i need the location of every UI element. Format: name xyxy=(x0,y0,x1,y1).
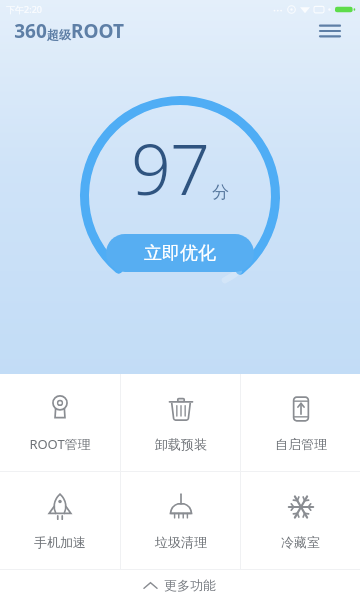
staticText: 手机加速 xyxy=(34,534,86,550)
button[interactable]: ROOT管理 xyxy=(0,374,120,471)
button[interactable]: 自启管理 xyxy=(241,374,360,471)
button[interactable]: 手机加速 xyxy=(0,472,120,569)
staticText: 更多功能 xyxy=(164,577,216,593)
staticText: 分 xyxy=(212,182,229,203)
button[interactable]: 垃圾清理 xyxy=(121,472,240,569)
staticText: 下午2:20 xyxy=(6,3,42,15)
button[interactable]: 立即优化 xyxy=(106,234,254,272)
staticText: 自启管理 xyxy=(275,436,327,452)
staticText: 97 xyxy=(131,120,209,215)
staticText: ROOT xyxy=(71,18,124,44)
staticText: 立即优化 xyxy=(144,242,216,265)
button[interactable]: 更多功能 xyxy=(0,570,360,600)
staticText: 垃圾清理 xyxy=(155,534,207,550)
staticText: 超级 xyxy=(47,27,71,42)
button[interactable]: 冷藏室 xyxy=(241,472,360,569)
staticText: ROOT管理 xyxy=(29,435,91,453)
staticText: 360 xyxy=(14,18,47,44)
button[interactable]: 菜单 xyxy=(310,18,350,44)
button[interactable]: 卸载预装 xyxy=(121,374,240,471)
staticText: 冷藏室 xyxy=(281,534,320,550)
staticText: 卸载预装 xyxy=(155,436,207,452)
